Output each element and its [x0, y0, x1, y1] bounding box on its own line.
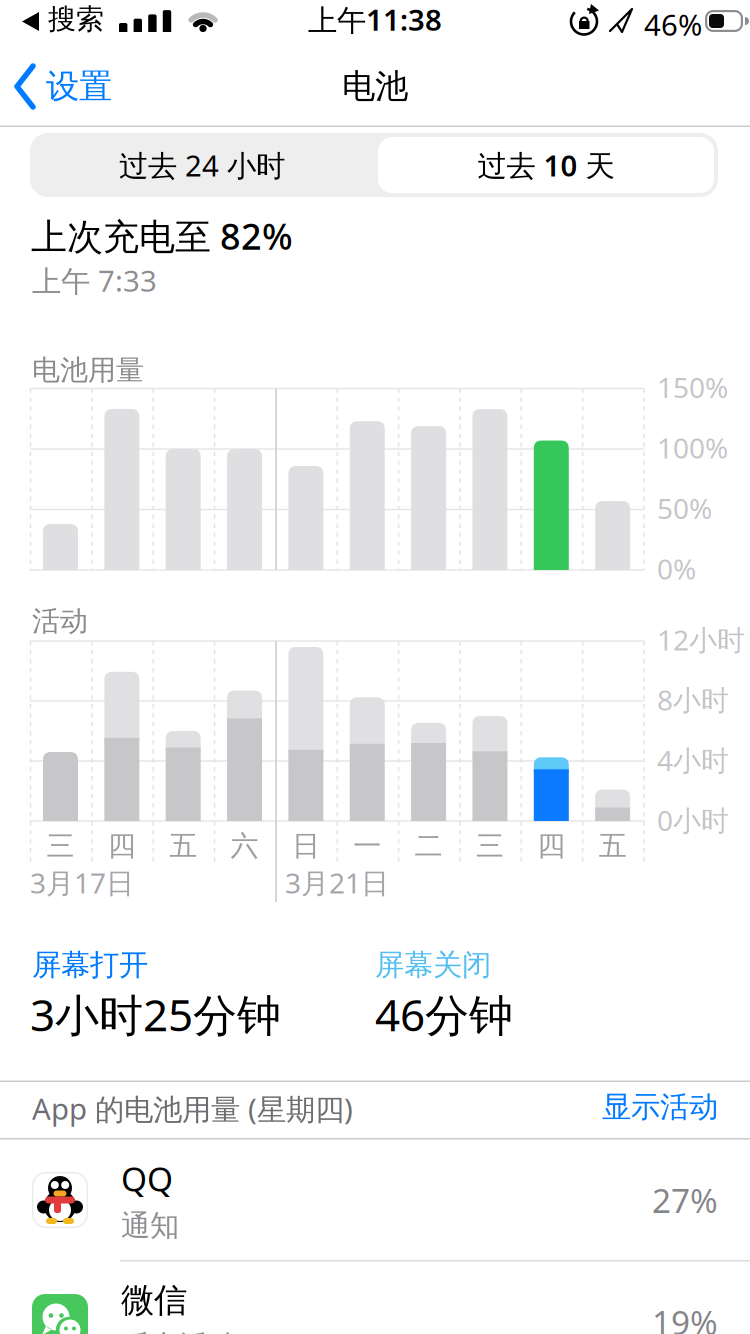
staticText: QQ: [121, 1156, 173, 1201]
staticText: 三: [476, 829, 504, 863]
staticText: 通知: [121, 1208, 179, 1244]
staticText: 屏幕关闭: [375, 947, 491, 983]
staticText: 4小时: [657, 741, 729, 779]
button[interactable]: 搜索: [0, 0, 110, 42]
button[interactable]: 过去 10 天: [374, 133, 718, 197]
staticText: 设置: [46, 66, 112, 107]
staticText: 电池用量: [32, 353, 144, 387]
staticText: 上午11:38: [308, 0, 442, 39]
staticText: 19%: [652, 1300, 718, 1334]
staticText: 过去 24 小时: [119, 145, 285, 184]
staticText: 搜索: [48, 2, 104, 36]
staticText: 六: [231, 829, 259, 863]
staticText: App 的电池用量 (星期四): [32, 1089, 353, 1128]
staticText: 三: [46, 829, 74, 863]
staticText: 46%: [644, 5, 702, 44]
button[interactable]: 设置: [0, 0, 130, 90]
staticText: 上次充电至 82%: [31, 212, 293, 260]
staticText: 二: [415, 829, 443, 863]
button[interactable]: 微信: [0, 1261, 750, 1334]
staticText: 0%: [657, 550, 696, 587]
staticText: 五: [169, 829, 197, 863]
staticText: 日: [292, 829, 320, 863]
button[interactable]: 过去 24 小时: [30, 133, 374, 197]
staticText: 0小时: [657, 801, 729, 839]
staticText: 活动: [32, 604, 88, 638]
staticText: 8小时: [657, 681, 729, 718]
staticText: 12小时: [657, 621, 745, 658]
staticText: 五: [599, 829, 627, 863]
staticText: 27%: [652, 1178, 718, 1222]
staticText: 50%: [657, 489, 712, 527]
staticText: 显示活动: [602, 1089, 718, 1125]
staticText: 上午 7:33: [32, 261, 157, 300]
button[interactable]: 显示活动: [602, 1089, 718, 1125]
staticText: 3月21日: [285, 864, 389, 901]
staticText: 屏幕打开: [32, 947, 148, 983]
staticText: 后台活动: [121, 1328, 237, 1334]
staticText: 过去 10 天: [477, 145, 614, 184]
staticText: 电池: [342, 66, 408, 107]
staticText: 3小时25分钟: [30, 985, 281, 1043]
staticText: 微信: [121, 1280, 187, 1321]
staticText: 46分钟: [375, 985, 513, 1043]
staticText: 四: [537, 829, 565, 863]
staticText: 四: [108, 829, 136, 863]
staticText: 100%: [657, 429, 728, 466]
staticText: 一: [353, 829, 381, 863]
button[interactable]: QQ: [0, 1139, 750, 1260]
staticText: 150%: [657, 368, 728, 406]
staticText: 3月17日: [30, 864, 134, 901]
